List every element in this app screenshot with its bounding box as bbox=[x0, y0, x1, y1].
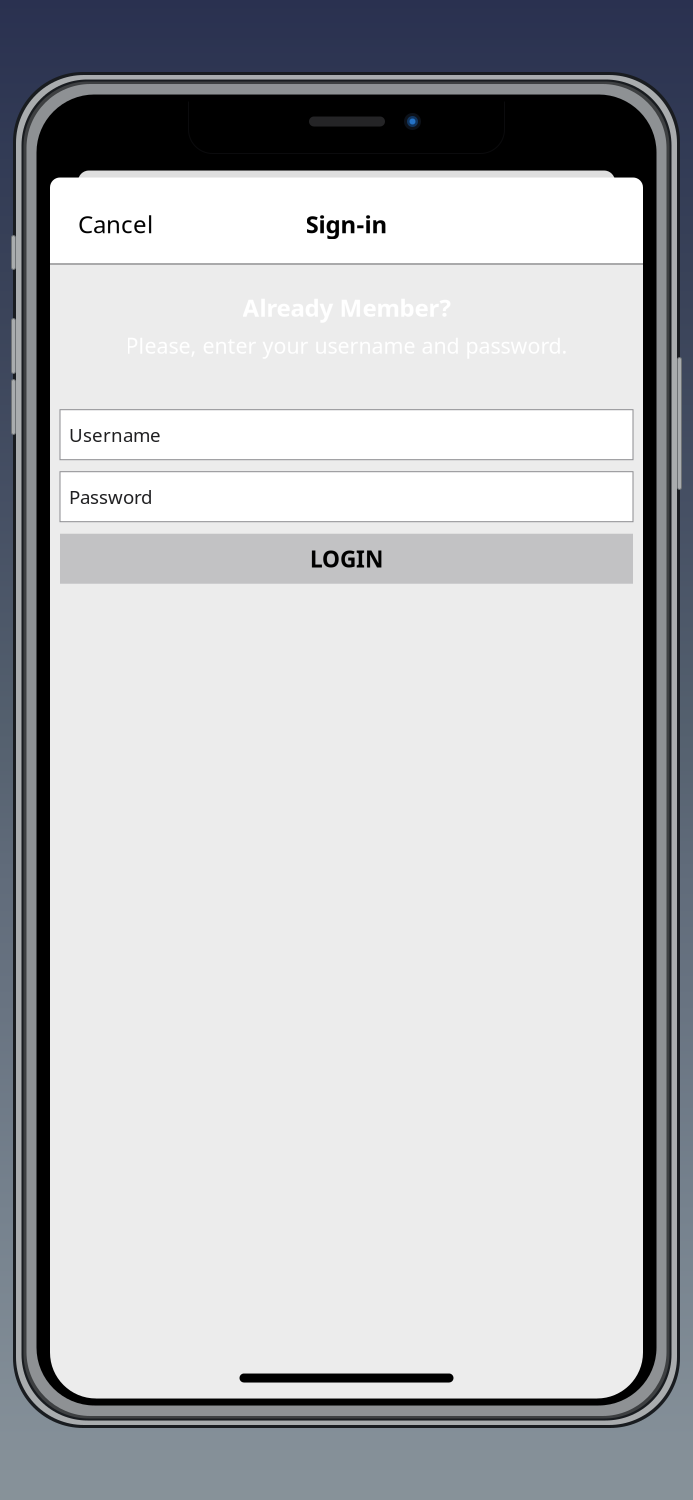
staticText: Cancel bbox=[78, 208, 153, 240]
button[interactable]: Password bbox=[60, 472, 633, 522]
staticText: Username bbox=[69, 422, 161, 447]
staticText: Sign-in bbox=[305, 208, 387, 240]
button[interactable]: Cancel bbox=[64, 186, 167, 255]
button[interactable]: Username bbox=[60, 410, 633, 460]
staticText: Already Member? bbox=[242, 291, 450, 323]
staticText: Password bbox=[69, 484, 152, 509]
staticText: LOGIN bbox=[310, 544, 383, 574]
staticText: Please, enter your username and password… bbox=[125, 331, 567, 360]
button[interactable]: LOGIN bbox=[60, 534, 633, 584]
